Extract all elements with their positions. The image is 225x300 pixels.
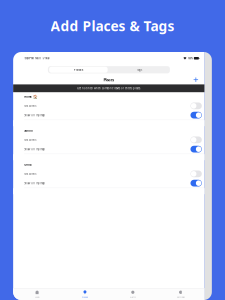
- staticText: Get notified when someone leaves or ente…: [77, 86, 141, 90]
- staticText: Alerts: [130, 295, 136, 298]
- button[interactable]: Tags: [109, 66, 170, 73]
- button[interactable]: Places: [48, 66, 109, 73]
- staticText: Home: [24, 95, 32, 98]
- staticText: Places: [103, 77, 114, 82]
- staticText: 1:03 PM: [24, 56, 33, 60]
- button[interactable]: Show on my map: [13, 178, 205, 188]
- button[interactable]: Settings: [157, 288, 205, 300]
- staticText: Show on my map: [24, 147, 45, 151]
- staticText: Map: [35, 295, 39, 298]
- staticText: Mon 17 Nov: [33, 56, 49, 60]
- button[interactable]: Show on my map: [13, 110, 205, 120]
- button[interactable]: Get Alerts: [13, 135, 205, 144]
- staticText: Tags: [137, 68, 142, 71]
- staticText: School: [24, 129, 33, 132]
- staticText: Show on my map: [24, 113, 45, 117]
- staticText: Places: [74, 68, 83, 71]
- staticText: 100%: [188, 56, 193, 60]
- button[interactable]: Places: [61, 288, 109, 300]
- button[interactable]: Get Alerts: [13, 101, 205, 110]
- button[interactable]: Map: [13, 288, 61, 300]
- button[interactable]: Alerts: [109, 288, 157, 300]
- staticText: Get Alerts: [24, 172, 36, 176]
- staticText: Show on my map: [24, 181, 45, 185]
- button[interactable]: Get Alerts: [13, 169, 205, 178]
- staticText: Settings: [177, 295, 185, 298]
- button[interactable]: Add place: [192, 76, 200, 83]
- staticText: 🏠: [33, 94, 38, 99]
- staticText: Add Places & Tags: [50, 17, 174, 35]
- staticText: Places: [82, 295, 88, 298]
- button[interactable]: Show on my map: [13, 144, 205, 154]
- staticText: Office: [24, 163, 32, 166]
- staticText: Get Alerts: [24, 104, 36, 108]
- staticText: Get Alerts: [24, 138, 36, 142]
